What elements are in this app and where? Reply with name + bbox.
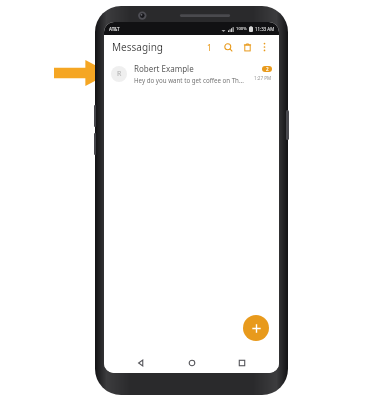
button[interactable]: R [104, 59, 279, 88]
button[interactable]: Select [202, 40, 216, 54]
button[interactable]: Search [221, 40, 235, 54]
staticText: Messaging [112, 40, 163, 54]
button[interactable]: Delete [240, 40, 254, 54]
button[interactable]: More options [257, 40, 271, 54]
staticText: 100% [236, 26, 247, 32]
staticText: Robert Example [134, 63, 194, 74]
button[interactable]: Home [178, 353, 206, 373]
staticText: 1:27 PM [254, 75, 272, 81]
staticText: 1 [207, 42, 212, 53]
staticText: 11:33 AM [255, 26, 275, 32]
staticText: Hey do you want to get coffee on Th… [134, 76, 244, 84]
staticText: R [117, 69, 122, 79]
button[interactable]: New message [243, 315, 269, 341]
button[interactable]: Back [127, 353, 155, 373]
staticText: AT&T [109, 26, 120, 32]
staticText: 2 [266, 66, 269, 72]
button[interactable]: Recent apps [228, 353, 256, 373]
